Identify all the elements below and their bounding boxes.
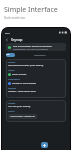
staticText: Component/Activity (This device) [8, 64, 44, 67]
staticText: Options [8, 87, 17, 90]
staticText: NFCTOGGLE - toggle nfc [10, 115, 35, 118]
staticText: Keymap [11, 38, 23, 42]
staticText: Constraints [8, 78, 20, 81]
staticText: 9:41 [5, 31, 10, 34]
staticText: NFC tag (This device) [8, 105, 31, 108]
staticText: Dark mode too [4, 16, 26, 20]
button[interactable]: Trigger [6, 100, 66, 122]
staticText: Simple Interface [4, 5, 58, 15]
button[interactable]: Add key map [41, 142, 48, 148]
button[interactable]: Trigger [6, 59, 66, 98]
staticText: Keymapper can record triggers [13, 47, 48, 50]
staticText: Open Google [12, 73, 27, 76]
staticText: Vibrate - Allow other apps [8, 90, 36, 93]
staticText: Trigger [8, 61, 16, 64]
button[interactable]: Key maps [6, 53, 15, 57]
button[interactable]: Back [5, 38, 9, 42]
button[interactable]: The accessibility service is enabled [6, 43, 66, 51]
staticText: Action [8, 110, 15, 113]
staticText: The accessibility service is enabled [13, 44, 52, 47]
staticText: Key maps [6, 53, 15, 57]
staticText: Fingerprint [34, 54, 46, 57]
staticText: Action [8, 69, 15, 72]
staticText: Trigger [8, 102, 16, 105]
staticText: Google is not installed [12, 82, 36, 85]
